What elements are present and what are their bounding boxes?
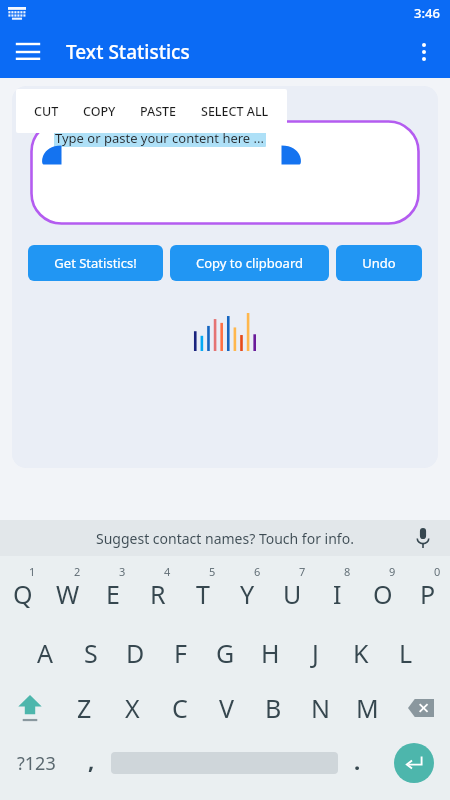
button[interactable]: Open navigation menu <box>8 32 48 72</box>
button[interactable]: 3 <box>90 562 135 620</box>
staticText: 9 <box>389 564 396 579</box>
button[interactable]: 1 <box>0 562 45 620</box>
staticText: G <box>216 636 235 670</box>
button[interactable]: Z <box>60 684 108 732</box>
button[interactable]: C <box>156 684 203 732</box>
staticText: Z <box>77 691 92 725</box>
staticText: 8 <box>344 564 351 579</box>
staticText: 0 <box>434 564 441 579</box>
staticText: R <box>150 577 166 611</box>
staticText: 7 <box>299 564 306 579</box>
button[interactable]: X <box>108 684 156 732</box>
button[interactable]: Enter <box>377 736 450 790</box>
staticText: X <box>125 691 140 725</box>
button[interactable]: F <box>158 630 203 676</box>
button[interactable]: Copy to clipboard <box>170 245 329 281</box>
button[interactable]: Space <box>111 736 338 790</box>
staticText: E <box>106 577 120 611</box>
button[interactable]: Voice input <box>408 523 438 553</box>
staticText: ?123 <box>17 751 56 776</box>
button[interactable]: Type or paste your content here ... <box>55 129 265 147</box>
button[interactable]: Delete <box>391 684 450 732</box>
staticText: N <box>311 691 331 725</box>
staticText: J <box>312 636 319 670</box>
staticText: , <box>88 745 95 775</box>
staticText: Y <box>240 577 255 611</box>
button[interactable]: Undo <box>336 245 422 281</box>
button[interactable]: L <box>383 630 428 676</box>
button[interactable]: A <box>22 630 68 676</box>
staticText: . <box>354 746 361 776</box>
staticText: S <box>84 636 98 670</box>
staticText: C <box>172 691 188 725</box>
staticText: PASTE <box>140 103 177 120</box>
button[interactable]: Get Statistics! <box>28 245 163 281</box>
staticText: 1 <box>29 564 36 579</box>
staticText: F <box>174 636 187 670</box>
button[interactable]: Suggest contact names? Touch for info. <box>96 529 354 548</box>
button[interactable]: PASTE <box>128 89 189 133</box>
staticText: SELECT ALL <box>201 103 269 120</box>
button[interactable]: COPY <box>71 89 128 133</box>
button[interactable]: J <box>293 630 338 676</box>
staticText: 6 <box>254 564 261 579</box>
staticText: B <box>265 691 282 725</box>
button[interactable]: , <box>72 736 111 790</box>
button[interactable]: 6 <box>225 562 270 620</box>
button[interactable]: 8 <box>315 562 360 620</box>
button[interactable]: V <box>203 684 250 732</box>
staticText: T <box>196 577 210 611</box>
staticText: M <box>356 691 379 725</box>
button[interactable]: K <box>338 630 383 676</box>
staticText: 4 <box>164 564 171 579</box>
button[interactable]: 2 <box>45 562 90 620</box>
button[interactable]: M <box>344 684 391 732</box>
staticText: P <box>420 577 436 611</box>
button[interactable]: D <box>113 630 158 676</box>
button[interactable]: G <box>203 630 248 676</box>
button[interactable]: 7 <box>270 562 315 620</box>
button[interactable]: 0 <box>405 562 450 620</box>
button[interactable]: . <box>338 736 377 790</box>
staticText: Copy to clipboard <box>196 254 303 272</box>
staticText: U <box>283 577 302 611</box>
staticText: W <box>56 577 80 611</box>
button[interactable]: SELECT ALL <box>189 89 281 133</box>
button[interactable]: Shift <box>0 684 60 732</box>
staticText: D <box>126 636 145 670</box>
staticText: I <box>333 577 342 611</box>
button[interactable]: H <box>248 630 293 676</box>
staticText: V <box>219 691 235 725</box>
staticText: Undo <box>362 254 396 272</box>
staticText: Type or paste your content here ... <box>55 129 265 147</box>
staticText: 3 <box>119 564 126 579</box>
staticText: K <box>353 636 369 670</box>
button[interactable]: B <box>250 684 297 732</box>
button[interactable]: 4 <box>135 562 180 620</box>
staticText: Get Statistics! <box>54 254 137 272</box>
staticText: H <box>261 636 280 670</box>
button[interactable]: S <box>68 630 113 676</box>
staticText: Q <box>13 577 33 611</box>
staticText: 2 <box>74 564 81 579</box>
button[interactable]: 5 <box>180 562 225 620</box>
staticText: Text Statistics <box>66 39 190 65</box>
staticText: A <box>37 636 53 670</box>
button[interactable]: CUT <box>22 89 71 133</box>
button[interactable]: 9 <box>360 562 405 620</box>
staticText: 3:46 <box>414 4 440 22</box>
staticText: L <box>399 636 413 670</box>
staticText: COPY <box>83 103 116 120</box>
button[interactable]: N <box>297 684 344 732</box>
staticText: O <box>373 577 393 611</box>
button[interactable]: ?123 <box>0 736 72 790</box>
staticText: CUT <box>34 103 59 120</box>
staticText: 5 <box>209 564 216 579</box>
button[interactable]: More options <box>404 32 444 72</box>
